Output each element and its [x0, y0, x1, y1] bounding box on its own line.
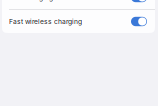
staticText: Fast wireless charging: [9, 17, 82, 26]
staticText: Fast charging: [9, 0, 53, 2]
button[interactable]: Fast wireless charging: [2, 10, 155, 33]
button[interactable]: Fast charging: [2, 0, 155, 9]
